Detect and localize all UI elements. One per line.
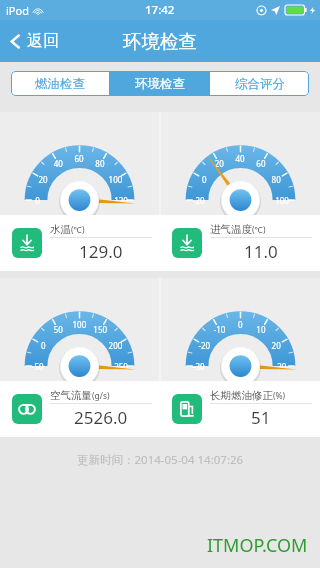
other: Temperature	[18, 234, 36, 252]
button[interactable]: 燃油检查	[11, 71, 109, 96]
staticText: (%)	[273, 390, 286, 402]
staticText: 返回	[27, 31, 59, 51]
staticText: 燃油检查	[35, 76, 85, 92]
button[interactable]: 返回	[0, 25, 71, 57]
button[interactable]: Air flow	[0, 381, 160, 437]
staticText: 空气流量	[50, 389, 92, 402]
staticText: (g/s)	[92, 390, 110, 402]
staticText: 进气温度	[210, 223, 252, 236]
staticText: 水温	[50, 223, 71, 236]
staticText: (℃)	[252, 224, 266, 236]
staticText: 环境检查	[123, 30, 197, 53]
staticText: 129.0	[79, 240, 123, 263]
button[interactable]: 综合评分	[210, 71, 309, 96]
other: Air flow	[18, 400, 36, 418]
button[interactable]: Fuel	[160, 381, 320, 437]
staticText: 长期燃油修正	[210, 389, 273, 402]
staticText: 综合评分	[235, 76, 285, 92]
staticText: 2526.0	[74, 406, 128, 429]
other: Temperature	[178, 234, 196, 252]
staticText: (℃)	[71, 224, 85, 236]
staticText: 环境检查	[135, 76, 185, 92]
button[interactable]: Temperature	[160, 215, 320, 271]
button[interactable]: Temperature	[0, 215, 160, 271]
other: Fuel	[178, 400, 196, 418]
staticText: iPod	[6, 3, 29, 18]
staticText: 51	[251, 406, 271, 429]
staticText: 更新时间：2014-05-04 14:07:26	[77, 452, 244, 468]
staticText: 11.0	[244, 240, 278, 263]
staticText: ITMOP.COM	[207, 533, 308, 558]
staticText: 17:42	[145, 2, 175, 18]
button[interactable]: 环境检查	[110, 71, 209, 96]
